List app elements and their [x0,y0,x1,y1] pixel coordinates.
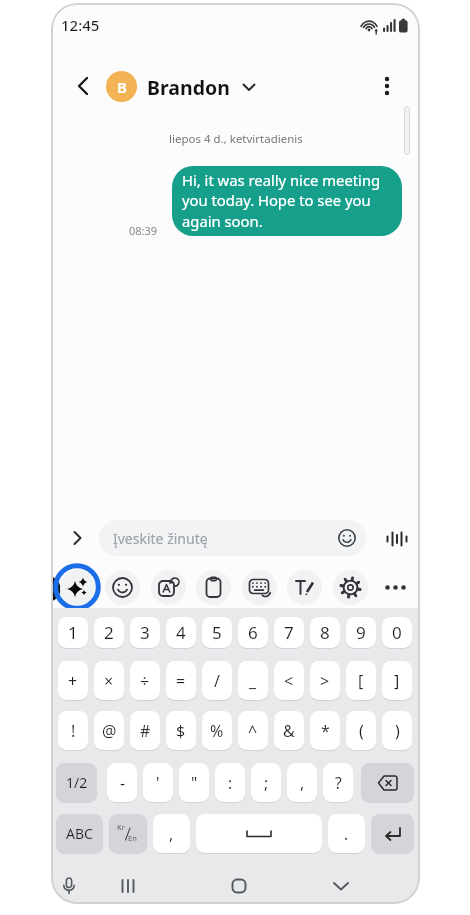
staticText: " [191,772,198,793]
button[interactable] [151,570,186,605]
staticText: 08:39 [129,223,158,238]
button[interactable]: " [179,763,209,802]
button[interactable]: 7 [274,617,304,648]
button[interactable] [67,69,101,103]
button[interactable]: 3 [130,617,160,648]
button[interactable]: ABC [56,814,103,853]
button[interactable]: ^ [238,711,268,750]
button[interactable]: _ [238,661,268,700]
staticText: < [284,670,294,692]
button[interactable] [384,526,409,551]
button[interactable] [63,524,91,552]
button[interactable] [196,814,322,853]
staticText: & [283,720,295,742]
button[interactable] [60,570,95,605]
button[interactable]: 1 [58,617,88,648]
staticText: ] [394,670,400,692]
button[interactable]: Kr [109,814,147,853]
button[interactable]: ) [382,711,412,750]
button[interactable]: ] [382,661,412,700]
button[interactable]: > [310,661,340,700]
button[interactable] [221,868,257,904]
staticText: 0 [392,621,402,644]
staticText: . [344,823,349,844]
button[interactable]: / [202,661,232,700]
button[interactable]: 0 [382,617,412,648]
button[interactable] [371,814,414,853]
button[interactable]: < [274,661,304,700]
button[interactable]: ( [346,711,376,750]
button[interactable]: = [166,661,196,700]
button[interactable] [378,570,413,605]
staticText: × [104,670,114,692]
staticText: 9 [356,621,366,644]
button[interactable]: @ [94,711,124,750]
staticText: 1/2 [66,773,88,792]
button[interactable]: 5 [202,617,232,648]
staticText: liepos 4 d., ketvirtadienis [169,131,303,147]
button[interactable]: 9 [346,617,376,648]
button[interactable]: Brandon [147,74,230,101]
staticText: + [68,670,78,692]
button[interactable] [287,570,322,605]
button[interactable]: , [153,814,190,853]
button[interactable]: $ [166,711,196,750]
button[interactable] [105,570,140,605]
button[interactable]: ! [58,711,88,750]
staticText: B [117,77,127,97]
button[interactable]: Įveskite žinutę [99,520,366,556]
staticText: 2 [104,621,114,644]
button[interactable]: 2 [94,617,124,648]
staticText: ? [335,772,342,793]
button[interactable] [242,570,277,605]
staticText: 4 [176,621,186,644]
staticText: ^ [248,720,258,742]
button[interactable]: Hi, it was really nice meeting you today… [172,166,402,236]
staticText: 12:45 [61,15,100,35]
staticText: 6 [248,621,258,644]
button[interactable]: ÷ [130,661,160,700]
staticText: : [228,772,233,793]
button[interactable] [333,570,368,605]
button[interactable]: . [328,814,365,853]
staticText: ' [156,772,160,793]
button[interactable]: B [106,71,137,102]
staticText: 7 [284,621,294,644]
button[interactable]: ? [323,763,353,802]
staticText: ! [71,720,76,742]
staticText: Brandon [147,74,230,101]
button[interactable]: ' [143,763,173,802]
staticText: 8 [320,621,330,644]
button[interactable] [323,868,359,904]
button[interactable]: , [287,763,317,802]
staticText: ( [359,720,364,742]
staticText: * [321,720,330,742]
button[interactable]: × [94,661,124,700]
button[interactable]: 4 [166,617,196,648]
staticText: % [210,720,224,742]
button[interactable]: * [310,711,340,750]
button[interactable]: ; [251,763,281,802]
staticText: 1 [68,621,78,644]
button[interactable]: % [202,711,232,750]
button[interactable]: # [130,711,160,750]
button[interactable] [110,868,146,904]
button[interactable]: 1/2 [56,763,97,802]
button[interactable] [371,67,403,105]
staticText: , [300,772,305,793]
button[interactable]: & [274,711,304,750]
button[interactable]: [ [346,661,376,700]
staticText: 3 [140,621,150,644]
button[interactable]: 8 [310,617,340,648]
button[interactable]: 6 [238,617,268,648]
button[interactable] [196,570,231,605]
staticText: , [169,823,174,844]
staticText: - [120,772,125,793]
button[interactable]: - [107,763,137,802]
button[interactable]: + [58,661,88,700]
staticText: En [128,833,137,843]
button[interactable] [51,868,87,904]
staticText: 5 [212,621,222,644]
button[interactable]: : [215,763,245,802]
button[interactable] [361,763,414,802]
